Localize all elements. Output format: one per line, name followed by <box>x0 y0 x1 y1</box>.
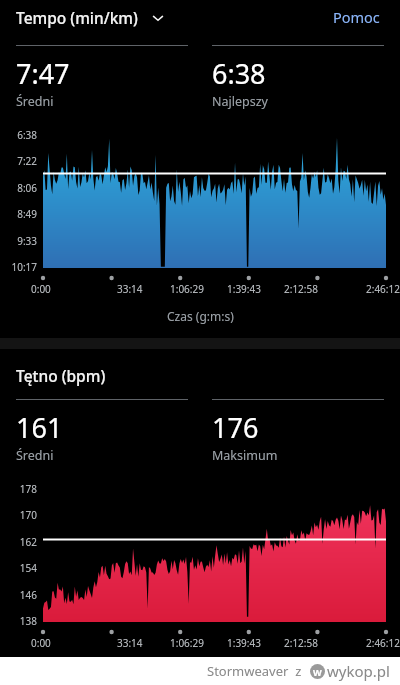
button[interactable]: Tętno (bpm) <box>16 365 384 386</box>
staticText: Średni <box>16 447 54 464</box>
staticText: 138 <box>19 614 37 628</box>
staticText: 10:17 <box>11 260 37 274</box>
staticText: 1:39:43 <box>227 282 261 296</box>
staticText: Czas (g:m:s) <box>167 308 234 324</box>
staticText: 0:00 <box>31 282 51 296</box>
staticText: 7:22 <box>17 154 37 168</box>
staticText: 7:47 <box>16 55 70 92</box>
button[interactable]: Tempo (min/km) <box>16 7 166 28</box>
staticText: Pomoc <box>333 7 380 27</box>
staticText: Najlepszy <box>212 93 268 110</box>
staticText: 170 <box>19 508 37 522</box>
staticText: Średni <box>16 93 54 110</box>
staticText: 33:14 <box>117 636 143 650</box>
staticText: Tętno (bpm) <box>16 365 106 386</box>
staticText: 146 <box>19 588 37 602</box>
staticText: 2:12:58 <box>284 282 318 296</box>
staticText: 6:38 <box>212 55 266 92</box>
staticText: 33:14 <box>117 282 143 296</box>
staticText: 1:06:29 <box>170 282 204 296</box>
staticText: 2:12:58 <box>284 636 318 650</box>
staticText: Tempo (min/km) <box>16 7 138 28</box>
staticText: 162 <box>19 535 37 549</box>
staticText: 6:38 <box>17 128 37 142</box>
other: Change metric <box>150 10 166 26</box>
staticText: 154 <box>19 561 37 575</box>
button[interactable]: Pomoc <box>329 3 384 31</box>
staticText: 176 <box>212 409 259 446</box>
staticText: W <box>313 666 322 678</box>
staticText: 161 <box>16 409 63 446</box>
staticText: 8:49 <box>17 207 37 221</box>
staticText: 2:46:12 <box>366 636 400 650</box>
staticText: Maksimum <box>212 447 278 464</box>
staticText: 178 <box>19 482 37 496</box>
staticText: Stormweaver z <box>207 662 302 680</box>
staticText: wykop.pl <box>327 661 390 681</box>
staticText: 0:00 <box>31 636 51 650</box>
staticText: 9:33 <box>17 234 37 248</box>
staticText: 8:06 <box>17 181 37 195</box>
staticText: 1:39:43 <box>227 636 261 650</box>
staticText: 1:06:29 <box>170 636 204 650</box>
staticText: 2:46:12 <box>366 282 400 296</box>
